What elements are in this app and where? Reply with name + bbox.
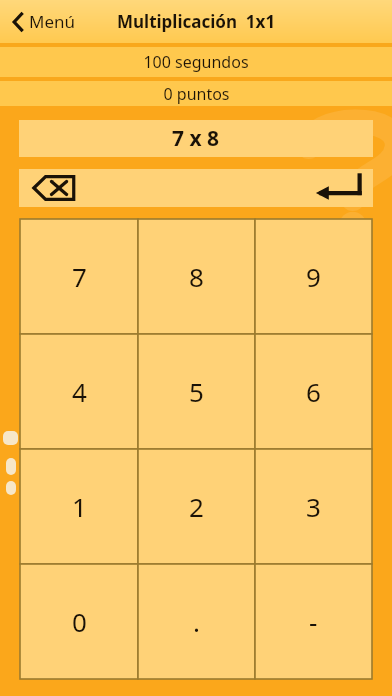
- staticText: 4: [72, 374, 87, 409]
- button[interactable]: 6: [255, 334, 372, 449]
- staticText: -: [309, 604, 318, 639]
- button[interactable]: Enter: [303, 169, 373, 207]
- staticText: 1: [72, 489, 87, 524]
- button[interactable]: -: [255, 564, 372, 679]
- button[interactable]: Menú: [12, 10, 76, 33]
- button[interactable]: 1: [20, 449, 138, 564]
- button[interactable]: .: [138, 564, 255, 679]
- button[interactable]: Backspace: [19, 169, 89, 207]
- staticText: 7 x 8: [172, 124, 220, 153]
- staticText: 0: [72, 604, 87, 639]
- staticText: Menú: [29, 10, 76, 33]
- button[interactable]: 9: [255, 219, 372, 334]
- staticText: 100 segundos: [143, 51, 249, 73]
- staticText: .: [193, 604, 200, 639]
- button[interactable]: 8: [138, 219, 255, 334]
- staticText: Multiplicación 1x1: [117, 10, 276, 33]
- staticText: 2: [189, 489, 204, 524]
- button[interactable]: 4: [20, 334, 138, 449]
- staticText: 6: [306, 374, 321, 409]
- staticText: 3: [306, 489, 321, 524]
- staticText: 0 puntos: [163, 83, 230, 105]
- button[interactable]: 2: [138, 449, 255, 564]
- button[interactable]: 3: [255, 449, 372, 564]
- button[interactable]: 5: [138, 334, 255, 449]
- staticText: 8: [189, 259, 204, 294]
- button[interactable]: 0: [20, 564, 138, 679]
- staticText: 7: [72, 259, 87, 294]
- button[interactable]: 7: [20, 219, 138, 334]
- staticText: 9: [306, 259, 321, 294]
- staticText: 5: [189, 374, 204, 409]
